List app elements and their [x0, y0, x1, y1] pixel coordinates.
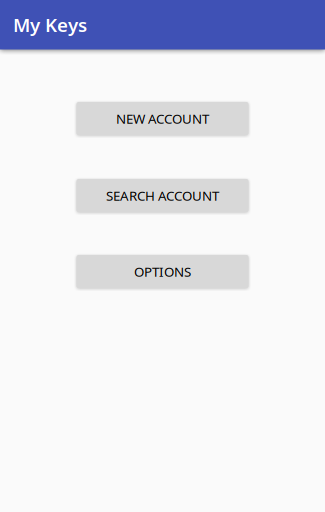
staticText: SEARCH ACCOUNT: [106, 187, 219, 204]
staticText: OPTIONS: [134, 263, 191, 280]
button[interactable]: OPTIONS: [76, 255, 248, 288]
button[interactable]: SEARCH ACCOUNT: [76, 179, 248, 212]
button[interactable]: NEW ACCOUNT: [76, 102, 248, 135]
staticText: My Keys: [13, 12, 87, 37]
staticText: NEW ACCOUNT: [116, 110, 209, 127]
